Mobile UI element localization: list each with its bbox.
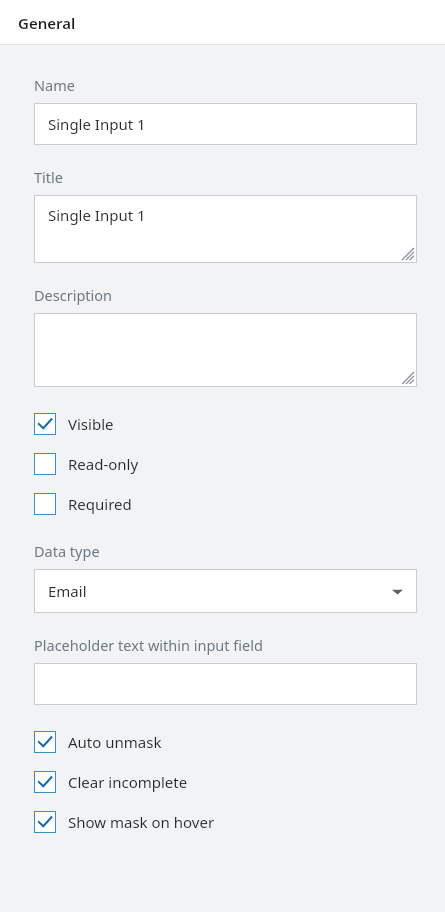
staticText: General	[18, 13, 76, 33]
button[interactable]: Auto unmask	[34, 731, 417, 753]
staticText: Auto unmask	[68, 732, 162, 752]
button[interactable]	[34, 313, 417, 387]
staticText: Title	[34, 167, 63, 187]
staticText: Required	[68, 494, 132, 514]
staticText: Single Input 1	[48, 114, 146, 134]
button[interactable]: Required	[34, 493, 417, 515]
staticText: Clear incomplete	[68, 772, 188, 792]
button[interactable]: Single Input 1	[34, 195, 417, 263]
staticText: Show mask on hover	[68, 812, 215, 832]
staticText: Name	[34, 75, 75, 95]
button[interactable]: Show mask on hover	[34, 811, 417, 833]
staticText: Single Input 1	[48, 205, 146, 225]
staticText: Visible	[68, 414, 114, 434]
staticText: Data type	[34, 541, 100, 561]
button[interactable]	[34, 663, 417, 705]
button[interactable]: Read-only	[34, 453, 417, 475]
staticText: Email	[48, 581, 87, 601]
staticText: Description	[34, 285, 113, 305]
staticText: Placeholder text within input field	[34, 635, 263, 655]
button[interactable]: Clear incomplete	[34, 771, 417, 793]
button[interactable]: Single Input 1	[34, 103, 417, 145]
button[interactable]: Email	[34, 569, 417, 613]
other: Open data type dropdown	[392, 586, 403, 597]
staticText: Read-only	[68, 454, 139, 474]
button[interactable]: Visible	[34, 413, 417, 435]
